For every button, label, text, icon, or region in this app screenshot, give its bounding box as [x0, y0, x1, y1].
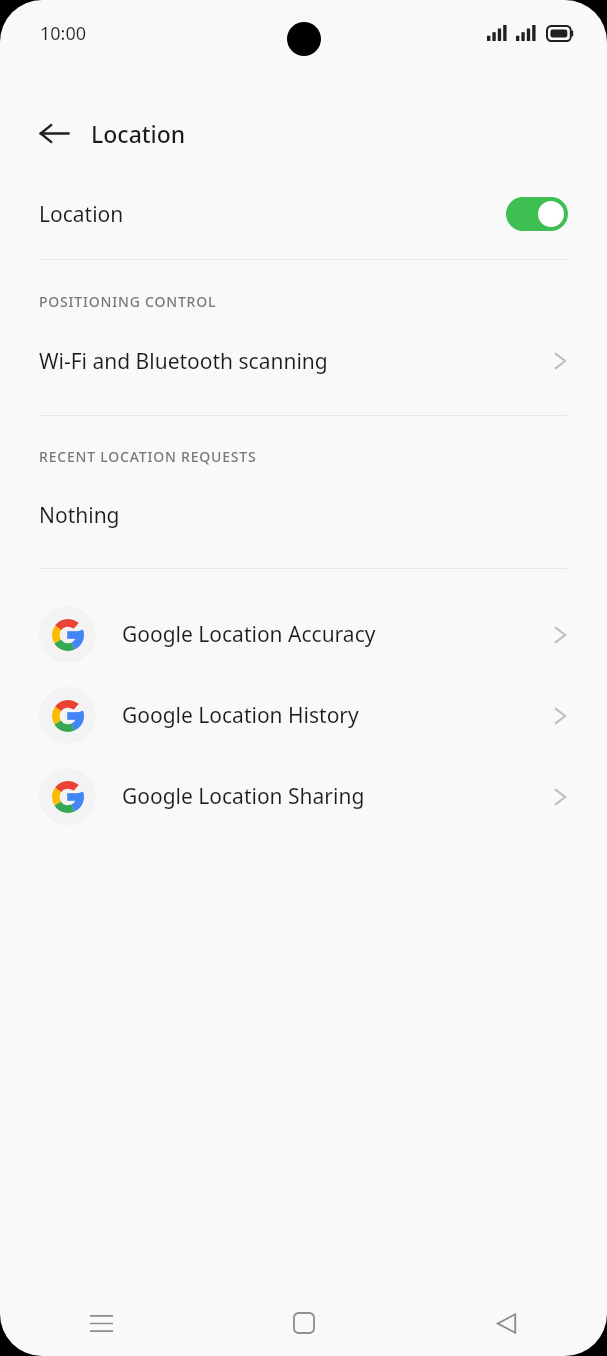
- button[interactable]: Google Location Sharing: [0, 756, 607, 837]
- button[interactable]: Location: [0, 183, 607, 245]
- staticText: RECENT LOCATION REQUESTS: [39, 447, 257, 466]
- button[interactable]: Google Location History: [0, 675, 607, 756]
- staticText: Location: [91, 118, 186, 149]
- staticText: Wi-Fi and Bluetooth scanning: [39, 347, 328, 376]
- staticText: Nothing: [39, 501, 120, 530]
- button[interactable]: Back: [405, 1290, 607, 1356]
- button[interactable]: Location toggle: [506, 197, 568, 231]
- button[interactable]: Recent apps: [0, 1290, 203, 1356]
- button[interactable]: Google Location Accuracy: [0, 594, 607, 675]
- staticText: Google Location Sharing: [122, 782, 365, 811]
- staticText: Google Location Accuracy: [122, 620, 376, 649]
- staticText: 10:00: [40, 21, 87, 46]
- button[interactable]: Back: [30, 109, 78, 157]
- button[interactable]: Home: [203, 1290, 405, 1356]
- button[interactable]: Wi-Fi and Bluetooth scanning: [0, 339, 607, 383]
- staticText: POSITIONING CONTROL: [39, 292, 217, 311]
- staticText: Location: [39, 200, 124, 229]
- staticText: Google Location History: [122, 701, 359, 730]
